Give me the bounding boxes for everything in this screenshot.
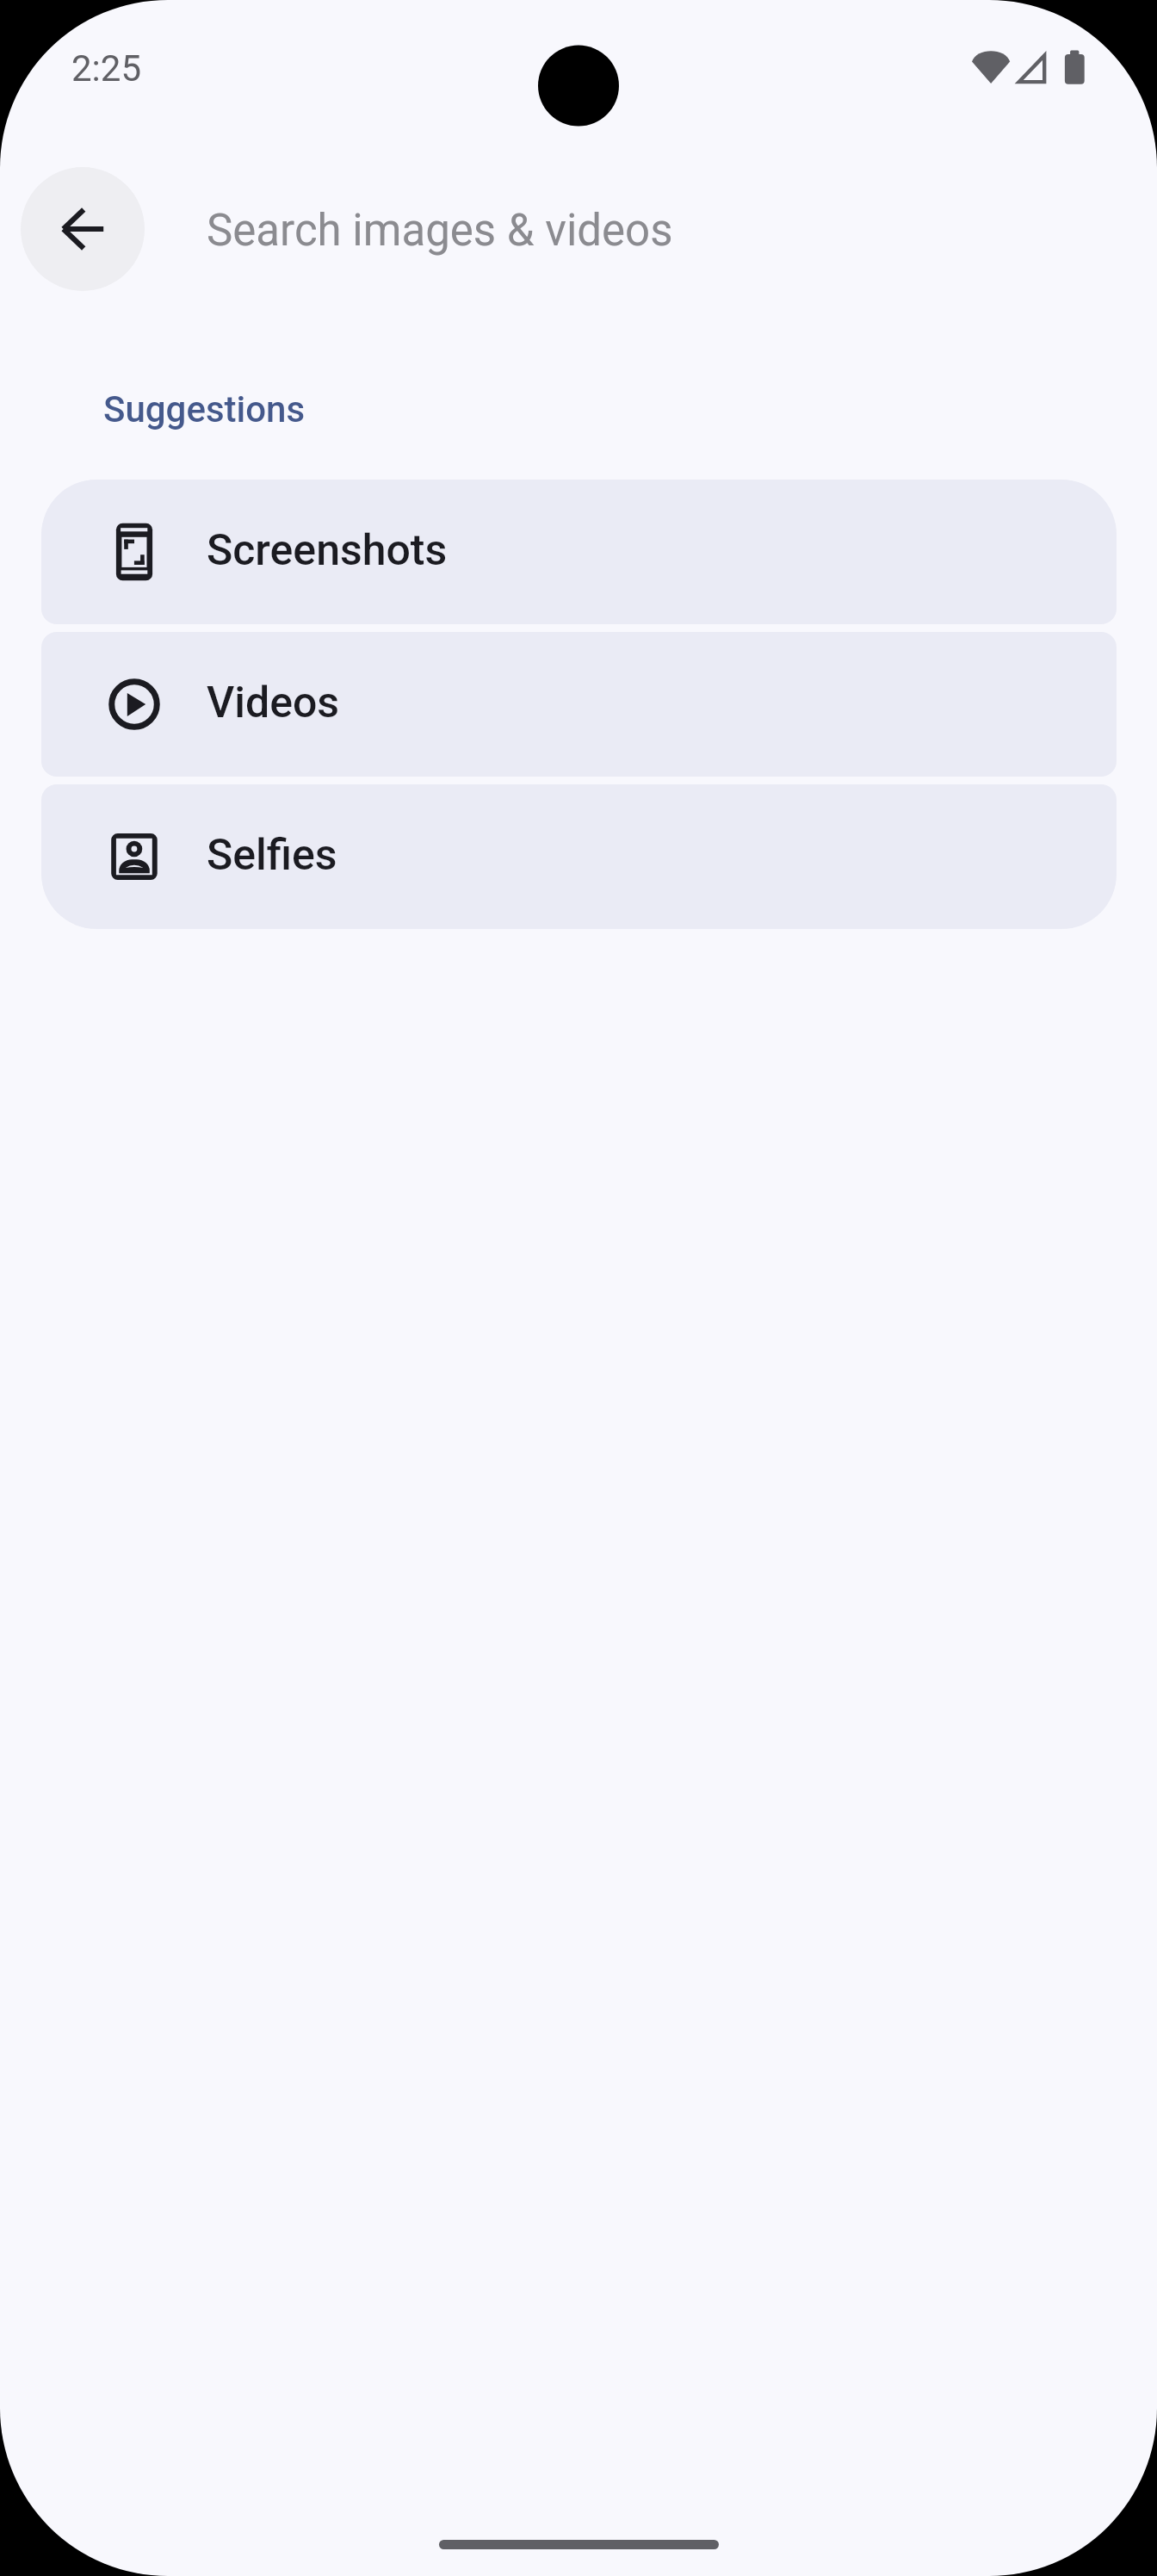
staticText: Selfies [207,830,337,881]
staticText: Suggestions [103,388,306,430]
button[interactable]: Back [21,167,145,291]
staticText: Search images & videos [207,205,673,257]
staticText: 2:25 [71,47,141,90]
staticText: Videos [207,678,340,728]
button[interactable]: Selfies [41,784,1117,929]
button[interactable]: Videos [41,632,1117,777]
button[interactable]: Screenshots [41,480,1117,624]
staticText: Screenshots [207,525,448,576]
